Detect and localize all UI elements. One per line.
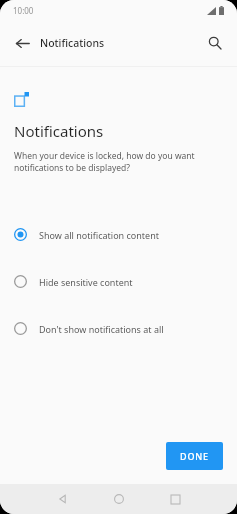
button[interactable]: DONE — [166, 442, 223, 470]
staticText: Notifications — [40, 36, 105, 50]
staticText: 10:00 — [13, 5, 34, 16]
staticText: When your device is locked, how do you w… — [14, 150, 195, 174]
button[interactable]: Recents — [147, 484, 203, 514]
button[interactable]: Back — [6, 27, 38, 59]
button[interactable]: Don't show notifications at all — [0, 316, 237, 341]
button[interactable]: Hide sensitive content — [0, 269, 237, 294]
button[interactable]: Home — [91, 484, 147, 514]
button[interactable]: Show all notification content — [0, 222, 237, 247]
button[interactable]: Back — [35, 484, 91, 514]
staticText: DONE — [180, 450, 209, 462]
staticText: Hide sensitive content — [39, 276, 133, 288]
staticText: Don't show notifications at all — [39, 323, 164, 335]
staticText: Notifications — [14, 121, 104, 141]
staticText: Show all notification content — [39, 229, 159, 241]
button[interactable]: Search — [199, 27, 231, 59]
